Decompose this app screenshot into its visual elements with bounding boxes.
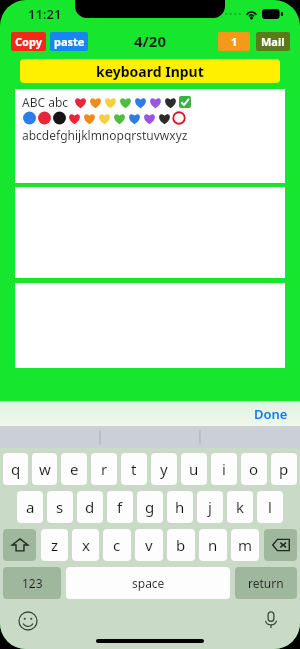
button[interactable]: w (32, 453, 57, 485)
staticText: d (85, 497, 95, 517)
staticText: space (132, 575, 165, 591)
staticText: n (208, 535, 218, 555)
button[interactable]: Backspace (264, 529, 297, 561)
button[interactable]: space (66, 567, 230, 599)
staticText: p (279, 459, 289, 479)
staticText: b (176, 535, 186, 555)
button[interactable]: b (167, 529, 195, 561)
button[interactable]: 123 (3, 567, 61, 599)
staticText: t (131, 459, 137, 479)
staticText: g (145, 497, 155, 517)
button[interactable]: 1 (218, 32, 250, 51)
staticText: h (175, 497, 185, 517)
staticText: m (238, 535, 253, 555)
button[interactable]: n (199, 529, 227, 561)
staticText: Mail (261, 34, 285, 49)
button[interactable]: Done (250, 402, 292, 426)
button[interactable]: Mail (256, 32, 290, 51)
button[interactable]: e (61, 453, 87, 485)
button[interactable]: Shift (3, 529, 36, 561)
button[interactable]: m (231, 529, 259, 561)
button[interactable]: z (41, 529, 68, 561)
staticText: v (145, 535, 153, 555)
staticText: a (26, 497, 35, 517)
button[interactable]: keyboard Input (20, 59, 280, 83)
staticText: ABC abc (22, 94, 69, 110)
staticText: q (11, 459, 21, 479)
staticText: 11:21 (28, 5, 62, 23)
staticText: e (70, 459, 79, 479)
button[interactable]: Copy (11, 32, 46, 51)
button[interactable]: h (167, 491, 193, 523)
staticText: u (189, 459, 199, 479)
staticText: 1 (231, 34, 238, 49)
button[interactable]: l (257, 491, 283, 523)
button[interactable]: u (181, 453, 207, 485)
button[interactable]: v (135, 529, 163, 561)
staticText: l (268, 497, 272, 517)
button[interactable]: g (137, 491, 163, 523)
staticText: keyboard Input (96, 62, 204, 81)
staticText: z (51, 535, 59, 555)
staticText: 4/20 (134, 31, 166, 51)
staticText: f (117, 497, 123, 517)
staticText: return (248, 575, 284, 591)
staticText: paste (54, 34, 85, 49)
button[interactable]: Dictation (262, 611, 280, 629)
button[interactable]: q (3, 453, 28, 485)
staticText: s (56, 497, 64, 517)
staticText: i (222, 459, 226, 479)
button[interactable]: j (197, 491, 223, 523)
button[interactable]: Emoji (18, 611, 38, 631)
button[interactable]: paste (50, 32, 88, 51)
button[interactable]: d (77, 491, 103, 523)
staticText: j (208, 497, 212, 517)
staticText: c (113, 535, 121, 555)
button[interactable]: o (241, 453, 267, 485)
button[interactable]: i (211, 453, 237, 485)
button[interactable]: k (227, 491, 253, 523)
staticText: w (39, 459, 51, 479)
button[interactable]: t (121, 453, 147, 485)
button[interactable]: s (47, 491, 73, 523)
button[interactable]: f (107, 491, 133, 523)
staticText: o (249, 459, 259, 479)
staticText: y (160, 459, 168, 479)
staticText: x (82, 535, 90, 555)
staticText: 123 (22, 575, 43, 591)
button[interactable]: return (235, 567, 297, 599)
button[interactable]: c (103, 529, 131, 561)
button[interactable]: r (91, 453, 117, 485)
button[interactable]: a (17, 491, 43, 523)
button[interactable]: p (271, 453, 297, 485)
staticText: Copy (15, 34, 42, 49)
button[interactable]: ABC abc (15, 89, 285, 183)
staticText: Done (254, 405, 288, 423)
button[interactable]: x (72, 529, 99, 561)
staticText: abcdefghijklmnopqrstuvwxyz (22, 127, 188, 143)
staticText: r (101, 459, 108, 479)
staticText: k (236, 497, 245, 517)
button[interactable]: y (151, 453, 177, 485)
